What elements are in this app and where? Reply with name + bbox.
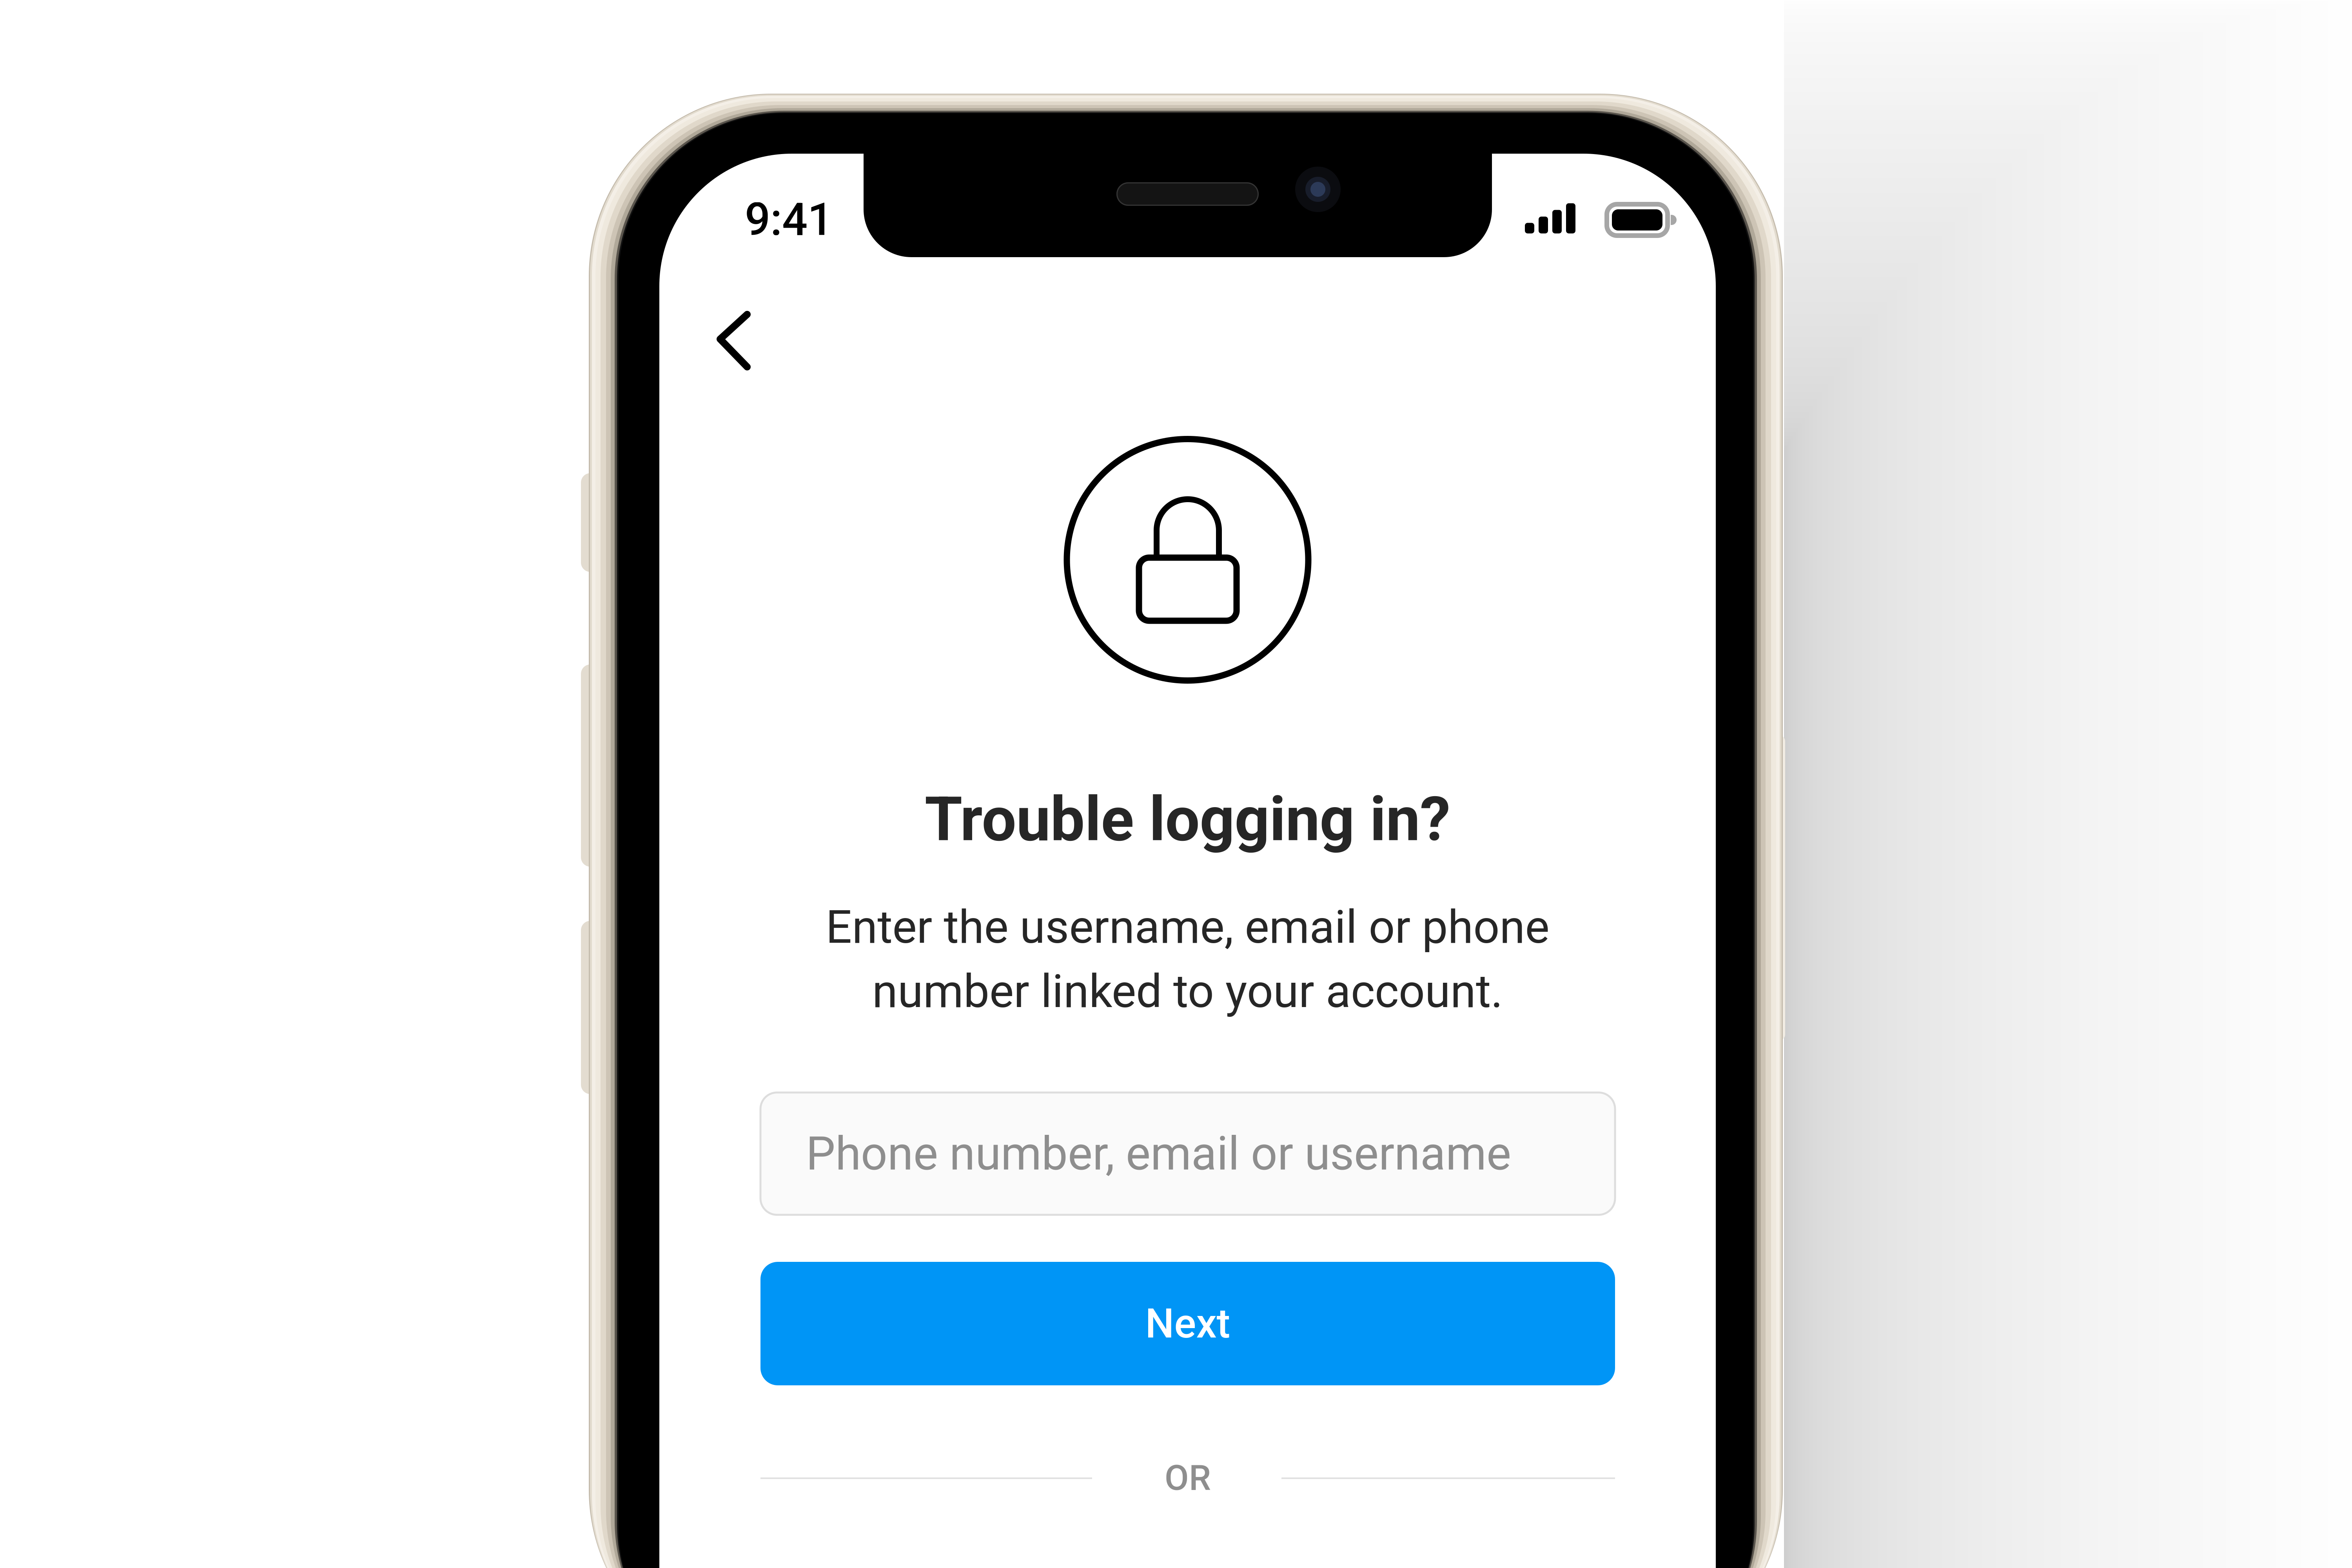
staticText: Next [1145,1300,1230,1347]
staticText: Phone number, email or username [806,1126,1511,1181]
button[interactable]: Back [659,154,1716,1568]
button[interactable]: Next [659,154,1716,1568]
staticText: Trouble logging in? [925,783,1451,855]
staticText: OR [1165,1457,1211,1498]
button[interactable]: Phone number, email or username [659,154,1716,1568]
staticText: number linked to your account. [872,964,1503,1018]
staticText: Enter the username, email or phone [826,900,1549,954]
staticText: 9:41 [745,193,833,246]
